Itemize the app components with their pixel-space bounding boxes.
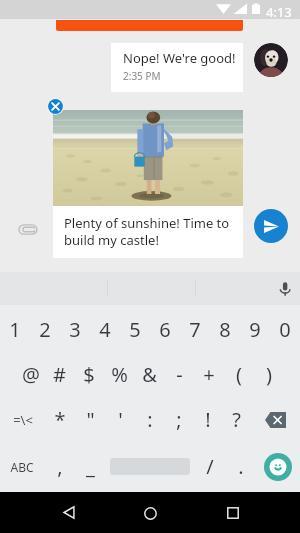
button[interactable]: ? bbox=[222, 397, 251, 442]
button[interactable]: =\< bbox=[0, 397, 45, 442]
button[interactable]: # bbox=[45, 352, 74, 397]
staticText: 8 bbox=[219, 316, 231, 343]
button[interactable]: 4 bbox=[90, 307, 120, 352]
button[interactable]: $ bbox=[74, 352, 104, 397]
button[interactable]: : bbox=[135, 397, 164, 442]
staticText: 6 bbox=[159, 316, 171, 343]
staticText: ( bbox=[236, 361, 242, 388]
button[interactable]: , bbox=[43, 442, 76, 491]
staticText: ABC bbox=[10, 459, 34, 475]
button[interactable]: 3 bbox=[60, 307, 90, 352]
button[interactable]: ABC bbox=[0, 442, 43, 491]
staticText: @ bbox=[22, 361, 40, 388]
staticText: 1 bbox=[9, 316, 21, 343]
staticText: " bbox=[86, 406, 95, 433]
staticText: ; bbox=[176, 406, 182, 433]
button[interactable]: - bbox=[164, 352, 194, 397]
staticText: $ bbox=[83, 361, 95, 388]
staticText: + bbox=[203, 361, 215, 388]
button[interactable]: Send bbox=[254, 209, 288, 243]
staticText: . bbox=[238, 453, 244, 480]
staticText: ' bbox=[118, 406, 123, 433]
button[interactable]: ' bbox=[105, 397, 135, 442]
button[interactable]: % bbox=[104, 352, 134, 397]
button[interactable]: / bbox=[194, 442, 226, 491]
staticText: / bbox=[206, 453, 214, 480]
button[interactable]: 0 bbox=[270, 307, 300, 352]
staticText: 5 bbox=[129, 316, 141, 343]
button[interactable] bbox=[56, 20, 243, 31]
button[interactable]: _ bbox=[76, 442, 105, 491]
staticText: Plenty of sunshine! Time to build my cas… bbox=[64, 214, 237, 249]
button[interactable]: Emoji bbox=[256, 442, 300, 491]
staticText: 0 bbox=[279, 316, 291, 343]
button[interactable]: ( bbox=[224, 352, 254, 397]
button[interactable]: Plenty of sunshine! Time to build my cas… bbox=[53, 206, 243, 258]
button[interactable]: + bbox=[194, 352, 224, 397]
button[interactable]: 5 bbox=[120, 307, 150, 352]
staticText: Nope! We're good! bbox=[123, 49, 236, 67]
staticText: =\< bbox=[13, 411, 33, 429]
staticText: % bbox=[111, 361, 128, 388]
staticText: , bbox=[57, 453, 63, 480]
staticText: : bbox=[147, 406, 153, 433]
staticText: 2 bbox=[39, 316, 51, 343]
button[interactable]: Back bbox=[56, 492, 82, 533]
button[interactable]: . bbox=[226, 442, 256, 491]
button[interactable]: Remove attachment bbox=[47, 98, 64, 115]
staticText: * bbox=[54, 406, 66, 433]
staticText: # bbox=[53, 361, 66, 388]
staticText: - bbox=[176, 361, 183, 388]
button[interactable]: Space bbox=[105, 442, 194, 491]
button[interactable]: ) bbox=[254, 352, 284, 397]
button[interactable]: Contact avatar bbox=[254, 43, 288, 77]
button[interactable]: Voice input bbox=[272, 276, 298, 302]
button[interactable]: 1 bbox=[0, 307, 30, 352]
staticText: 9 bbox=[249, 316, 261, 343]
staticText: 2:35 PM bbox=[123, 69, 161, 83]
staticText: _ bbox=[86, 453, 95, 480]
button[interactable]: ! bbox=[193, 397, 222, 442]
staticText: ? bbox=[232, 406, 241, 433]
staticText: & bbox=[142, 361, 157, 388]
button[interactable]: ; bbox=[164, 397, 193, 442]
staticText: ) bbox=[266, 361, 272, 388]
button[interactable]: 7 bbox=[180, 307, 210, 352]
staticText: 3 bbox=[69, 316, 81, 343]
button[interactable]: 6 bbox=[150, 307, 180, 352]
button[interactable]: Attach bbox=[12, 213, 44, 245]
button[interactable]: Home bbox=[137, 500, 163, 526]
button[interactable]: Recent apps bbox=[220, 492, 246, 533]
button[interactable]: Nope! We're good! bbox=[111, 43, 243, 92]
staticText: 4:13 bbox=[266, 3, 292, 21]
staticText: 4 bbox=[99, 316, 111, 343]
button[interactable]: & bbox=[134, 352, 164, 397]
staticText: ! bbox=[205, 406, 211, 433]
button[interactable]: 8 bbox=[210, 307, 240, 352]
button[interactable]: Backspace bbox=[251, 397, 300, 442]
staticText: 7 bbox=[189, 316, 201, 343]
button[interactable]: 9 bbox=[240, 307, 270, 352]
button[interactable]: 2 bbox=[30, 307, 60, 352]
button[interactable]: @ bbox=[16, 352, 45, 397]
button[interactable]: * bbox=[45, 397, 75, 442]
button[interactable]: " bbox=[75, 397, 105, 442]
